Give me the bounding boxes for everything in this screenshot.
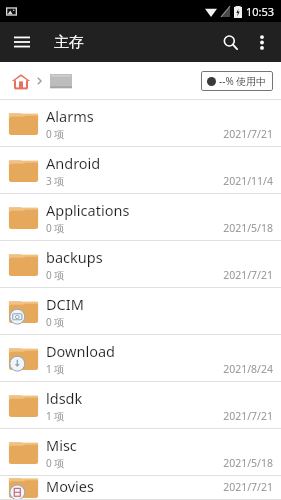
- staticText: backups: [46, 247, 103, 267]
- staticText: Misc: [46, 435, 77, 455]
- staticText: Applications: [46, 200, 130, 220]
- button[interactable]: backups: [0, 241, 281, 288]
- staticText: 主存: [54, 33, 84, 52]
- staticText: Download: [46, 341, 115, 361]
- button[interactable]: Open navigation drawer: [8, 28, 36, 56]
- staticText: 0 项: [46, 497, 65, 500]
- button[interactable]: More options: [247, 27, 277, 57]
- staticText: 2021/7/21: [223, 409, 273, 423]
- staticText: 2021/11/4: [223, 174, 273, 188]
- staticText: 2021/5/18: [223, 221, 273, 235]
- staticText: 0 项: [46, 315, 65, 329]
- staticText: Movies: [46, 476, 94, 496]
- staticText: 1 项: [46, 409, 65, 423]
- staticText: 2021/7/21: [223, 268, 273, 282]
- staticText: 0 项: [46, 268, 65, 282]
- button[interactable]: Internal storage: [48, 68, 74, 94]
- button[interactable]: Android: [0, 147, 281, 194]
- staticText: 2021/8/24: [223, 362, 273, 376]
- staticText: 0 项: [46, 221, 65, 235]
- button[interactable]: Alarms: [0, 100, 281, 147]
- staticText: 10:53: [246, 4, 275, 19]
- staticText: --% 使用中: [219, 74, 267, 88]
- button[interactable]: DCIM: [0, 288, 281, 335]
- staticText: Alarms: [46, 106, 94, 126]
- button[interactable]: Home: [8, 68, 34, 94]
- button[interactable]: ldsdk: [0, 382, 281, 429]
- staticText: DCIM: [46, 294, 84, 314]
- staticText: ldsdk: [46, 388, 83, 408]
- button[interactable]: Download: [0, 335, 281, 382]
- button[interactable]: Search: [213, 25, 247, 59]
- staticText: 0 项: [46, 456, 65, 470]
- staticText: 2021/5/18: [223, 456, 273, 470]
- button[interactable]: Movies: [0, 476, 281, 500]
- staticText: Android: [46, 153, 101, 173]
- button[interactable]: --% 使用中: [201, 71, 273, 91]
- staticText: 2021/7/21: [223, 480, 273, 494]
- staticText: 3 项: [46, 174, 65, 188]
- staticText: 0 项: [46, 127, 65, 141]
- button[interactable]: Applications: [0, 194, 281, 241]
- button[interactable]: Misc: [0, 429, 281, 476]
- staticText: 2021/7/21: [223, 127, 273, 141]
- staticText: 1 项: [46, 362, 65, 376]
